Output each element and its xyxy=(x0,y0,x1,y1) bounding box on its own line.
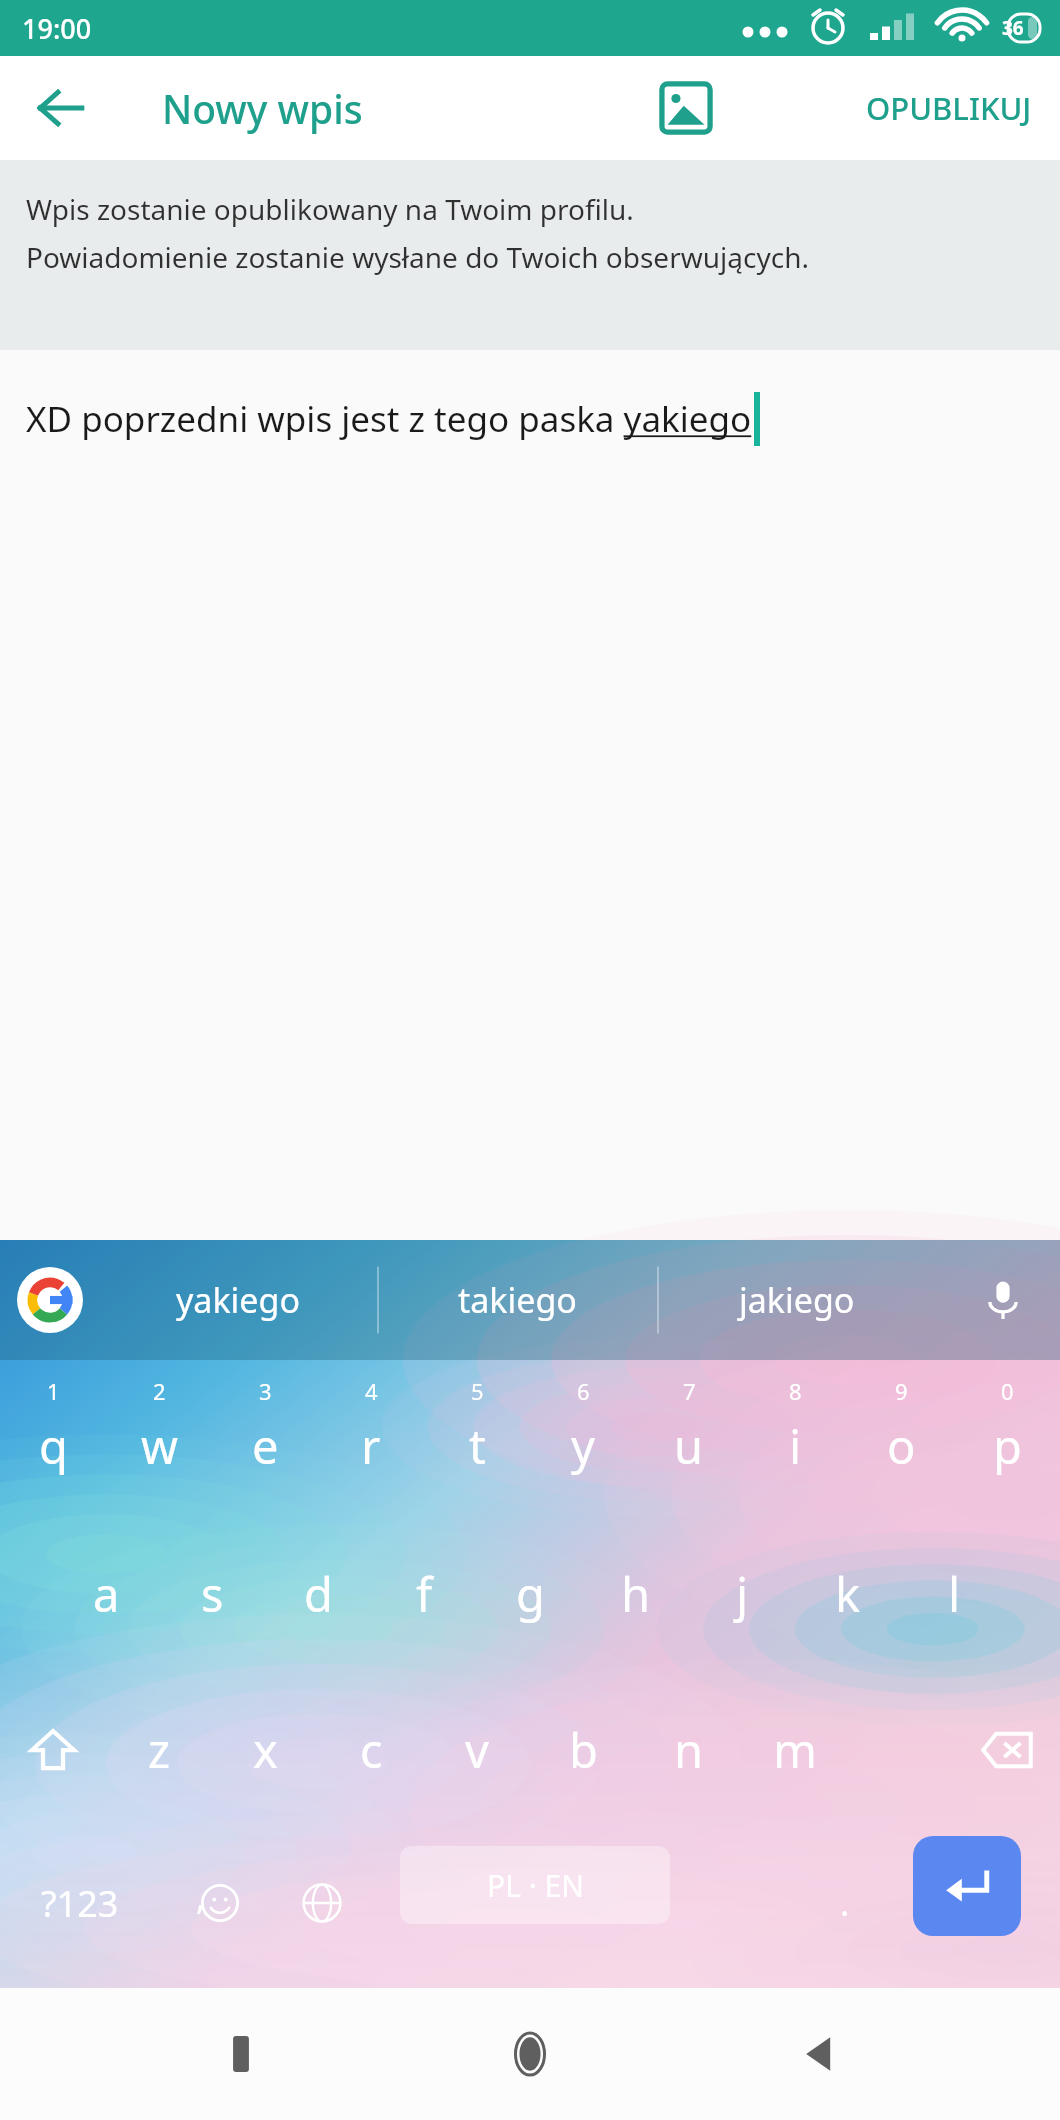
staticText: PL · EN xyxy=(487,1865,584,1906)
staticText: j xyxy=(736,1562,749,1626)
button[interactable]: Recents xyxy=(193,2006,289,2102)
button[interactable]: Back xyxy=(18,66,102,150)
button[interactable]: m xyxy=(742,1672,848,1828)
button[interactable]: d xyxy=(265,1516,371,1672)
button[interactable]: 8 xyxy=(742,1360,848,1516)
button[interactable]: Home xyxy=(482,2006,578,2102)
staticText: l xyxy=(948,1562,961,1626)
button[interactable]: a xyxy=(53,1516,159,1672)
button[interactable]: b xyxy=(530,1672,636,1828)
staticText: 4 xyxy=(365,1376,378,1406)
staticText: , xyxy=(196,1874,206,1920)
button[interactable]: k xyxy=(795,1516,901,1672)
button[interactable]: 3 xyxy=(212,1360,318,1516)
staticText: i xyxy=(789,1414,802,1478)
staticText: o xyxy=(887,1414,916,1478)
staticText: Powiadomienie zostanie wysłane do Twoich… xyxy=(26,238,809,276)
button[interactable]: l xyxy=(901,1516,1007,1672)
staticText: OPUBLIKUJ xyxy=(866,87,1032,129)
staticText: XD poprzedni wpis jest z tego paska yaki… xyxy=(26,395,752,443)
staticText: Nowy wpis xyxy=(162,82,363,135)
staticText: d xyxy=(304,1562,333,1626)
staticText: m xyxy=(773,1718,817,1782)
staticText: 19:00 xyxy=(22,10,92,47)
staticText: c xyxy=(360,1718,383,1782)
button[interactable]: XD poprzedni wpis jest z tego paska yaki… xyxy=(26,392,1060,446)
staticText: 36 xyxy=(1002,15,1024,41)
button[interactable]: s xyxy=(159,1516,265,1672)
staticText: . xyxy=(840,1880,850,1926)
staticText: yakiego xyxy=(176,1277,300,1323)
staticText: q xyxy=(39,1414,68,1478)
button[interactable]: Add image xyxy=(640,62,732,154)
staticText: s xyxy=(201,1562,224,1626)
button[interactable]: h xyxy=(583,1516,689,1672)
staticText: x xyxy=(253,1718,278,1782)
staticText: 1 xyxy=(47,1376,60,1406)
button[interactable]: 1 xyxy=(0,1360,106,1516)
button[interactable]: 7 xyxy=(636,1360,742,1516)
staticText: f xyxy=(416,1562,433,1626)
button[interactable]: Voice input xyxy=(968,1265,1038,1335)
staticText: v xyxy=(465,1718,489,1782)
staticText: y xyxy=(571,1414,595,1478)
staticText: 5 xyxy=(471,1376,484,1406)
staticText: w xyxy=(141,1414,178,1478)
button[interactable]: f xyxy=(371,1516,477,1672)
staticText: 6 xyxy=(577,1376,590,1406)
staticText: 7 xyxy=(683,1376,696,1406)
button[interactable]: x xyxy=(212,1672,318,1828)
button[interactable]: 9 xyxy=(848,1360,954,1516)
button[interactable]: 0 xyxy=(954,1360,1060,1516)
button[interactable]: Backspace xyxy=(954,1672,1060,1828)
button[interactable]: n xyxy=(636,1672,742,1828)
button[interactable]: yakiego xyxy=(123,1240,353,1360)
staticText: e xyxy=(252,1414,279,1478)
staticText: 8 xyxy=(789,1376,802,1406)
staticText: a xyxy=(93,1562,120,1626)
staticText: 0 xyxy=(1001,1376,1014,1406)
button[interactable]: 4 xyxy=(318,1360,424,1516)
button[interactable]: 5 xyxy=(424,1360,530,1516)
staticText: n xyxy=(674,1718,704,1782)
button[interactable]: Enter xyxy=(913,1836,1021,1936)
staticText: z xyxy=(148,1718,171,1782)
button[interactable]: c xyxy=(318,1672,424,1828)
button[interactable]: j xyxy=(689,1516,795,1672)
staticText: b xyxy=(569,1718,598,1782)
button[interactable]: PL · EN xyxy=(400,1846,670,1924)
staticText: r xyxy=(361,1414,381,1478)
button[interactable]: Emoji xyxy=(165,1828,275,1978)
staticText: ?123 xyxy=(41,1879,119,1928)
button[interactable]: 2 xyxy=(106,1360,212,1516)
staticText: 2 xyxy=(153,1376,166,1406)
button[interactable]: Shift xyxy=(0,1672,106,1828)
button[interactable]: 6 xyxy=(530,1360,636,1516)
staticText: takiego xyxy=(458,1277,577,1323)
button[interactable]: OPUBLIKUJ xyxy=(846,71,1052,145)
button[interactable]: v xyxy=(424,1672,530,1828)
staticText: t xyxy=(469,1414,486,1478)
staticText: g xyxy=(516,1562,545,1626)
button[interactable]: g xyxy=(477,1516,583,1672)
staticText: 3 xyxy=(259,1376,272,1406)
staticText: Wpis zostanie opublikowany na Twoim prof… xyxy=(26,190,634,228)
button[interactable]: takiego xyxy=(402,1240,632,1360)
button[interactable]: jakiego xyxy=(682,1240,912,1360)
button[interactable]: z xyxy=(106,1672,212,1828)
staticText: p xyxy=(993,1414,1022,1478)
staticText: u xyxy=(674,1414,704,1478)
button[interactable]: Back xyxy=(771,2006,867,2102)
button[interactable]: Google xyxy=(17,1267,83,1333)
staticText: k xyxy=(835,1562,861,1626)
staticText: h xyxy=(621,1562,651,1626)
button[interactable]: Change language xyxy=(267,1828,377,1978)
button[interactable]: ?123 xyxy=(0,1828,160,1978)
staticText: 9 xyxy=(895,1376,908,1406)
staticText: jakiego xyxy=(739,1277,855,1323)
